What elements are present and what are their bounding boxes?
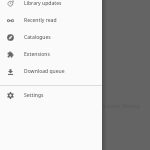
button[interactable]: Settings bbox=[0, 87, 102, 104]
staticText: Library updates bbox=[24, 0, 62, 7]
button[interactable]: Library updates bbox=[0, 0, 102, 12]
staticText: Catalogues bbox=[24, 34, 51, 41]
button[interactable]: Close navigation drawer bbox=[0, 0, 150, 150]
button[interactable]: Recently read bbox=[0, 12, 102, 29]
staticText: Extensions bbox=[24, 51, 50, 58]
button[interactable]: Catalogues bbox=[0, 29, 102, 46]
button[interactable]: Extensions bbox=[0, 46, 102, 63]
staticText: Tap the + button to add manga to your li… bbox=[11, 102, 140, 110]
staticText: Download queue bbox=[24, 68, 65, 75]
staticText: Settings bbox=[24, 92, 44, 99]
button[interactable]: Download queue bbox=[0, 63, 102, 80]
staticText: Recently read bbox=[24, 17, 57, 24]
